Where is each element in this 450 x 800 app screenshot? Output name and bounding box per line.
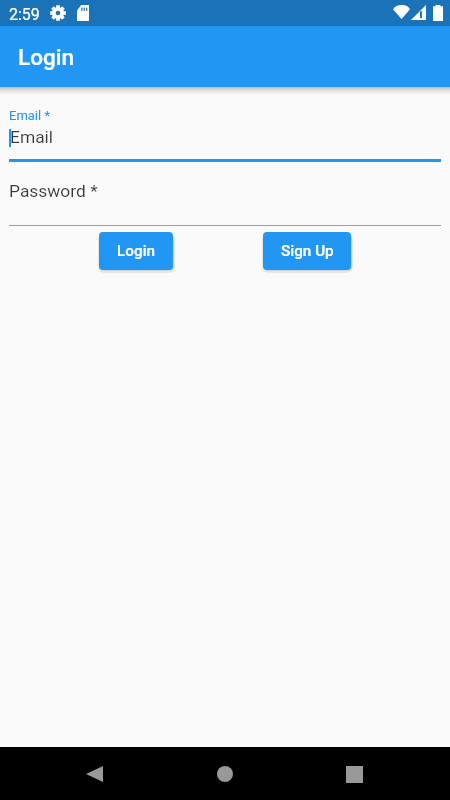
staticText: Email xyxy=(10,127,54,147)
button[interactable]: Password * xyxy=(9,174,441,226)
button[interactable]: Back xyxy=(76,756,112,792)
button[interactable]: Login xyxy=(99,232,173,270)
staticText: Login xyxy=(18,44,75,70)
staticText: Email * xyxy=(9,108,51,123)
button[interactable]: Sign Up xyxy=(263,232,351,270)
button[interactable]: Recents xyxy=(336,756,372,792)
staticText: 2:59 xyxy=(9,5,40,24)
button[interactable]: Home xyxy=(207,756,243,792)
button[interactable]: Email * xyxy=(9,101,441,162)
staticText: Sign Up xyxy=(281,242,334,260)
staticText: Password * xyxy=(9,181,98,201)
staticText: Login xyxy=(117,242,156,260)
